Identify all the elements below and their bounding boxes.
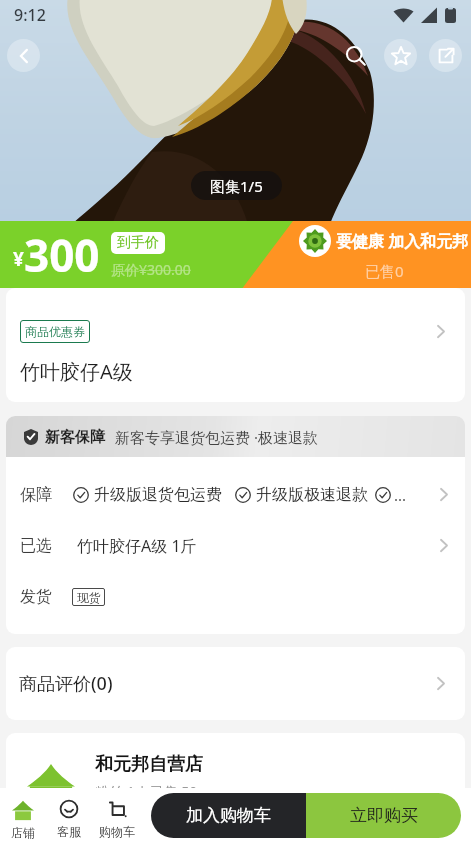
staticText: 发货 (20, 587, 52, 607)
button[interactable]: Customer service (46, 788, 92, 842)
staticText: 新客保障 (45, 428, 105, 447)
staticText: 竹叶胶仔A级 (20, 358, 133, 385)
button[interactable]: 商品优惠券 (20, 320, 90, 343)
staticText: 9:12 (14, 4, 46, 26)
button[interactable]: Favorite (384, 39, 417, 72)
staticText: 店铺 (11, 825, 35, 840)
staticText: 要健康 加入和元邦 (336, 230, 469, 252)
staticText: 到手价 (117, 234, 159, 252)
staticText: 新客专享退货包运费 ·极速退款 (115, 427, 318, 447)
staticText: 商品评价(0) (19, 671, 113, 696)
button[interactable]: 加入购物车 (151, 793, 306, 838)
button[interactable]: Cart (92, 788, 142, 842)
staticText: 原价¥300.00 (111, 260, 191, 279)
button[interactable]: 保障 (6, 469, 465, 520)
staticText: 和元邦自营店 (95, 753, 203, 776)
staticText: 加入购物车 (186, 805, 271, 826)
staticText: 现货 (77, 590, 101, 605)
staticText: 升级版退货包运费 (94, 485, 222, 505)
button[interactable]: Search (339, 39, 372, 72)
staticText: 保障 (20, 485, 52, 505)
button[interactable]: Shop (0, 788, 46, 842)
staticText: ¥ (13, 246, 24, 272)
button[interactable]: 图集1/5 (191, 171, 282, 200)
staticText: 图集1/5 (210, 176, 263, 196)
staticText: 竹叶胶仔A级 1斤 (77, 535, 197, 557)
button[interactable]: Share (429, 39, 462, 72)
staticText: 立即购买 (350, 805, 418, 826)
staticText: 商品优惠券 (25, 324, 85, 339)
button[interactable]: 和元邦自营店 (6, 733, 465, 842)
button[interactable]: 商品评价(0) (6, 647, 465, 720)
staticText: 已选 (20, 536, 52, 556)
staticText: 升级版极速退款 (256, 485, 368, 505)
button[interactable]: 已选 (6, 520, 465, 571)
button[interactable]: 立即购买 (306, 793, 461, 838)
staticText: 购物车 (99, 824, 135, 839)
staticText: 已售0 (365, 261, 404, 281)
button[interactable]: Back (7, 39, 40, 72)
staticText: 客服 (57, 824, 81, 839)
staticText: ... (394, 485, 407, 505)
staticText: 粉丝 1 | 已售 50 (95, 782, 198, 801)
staticText: 300 (24, 225, 100, 285)
